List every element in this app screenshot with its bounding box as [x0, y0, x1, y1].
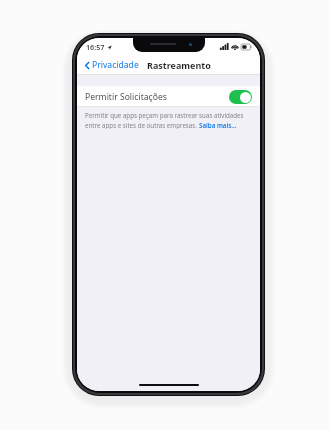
- button[interactable]: Privacidade: [84, 57, 140, 73]
- button[interactable]: Permitir Solicitações: [77, 86, 260, 107]
- button[interactable]: Permitir Solicitações: [229, 90, 252, 104]
- staticText: 16:57: [86, 42, 105, 52]
- staticText: Saiba mais...: [199, 121, 237, 129]
- staticText: Privacidade: [92, 59, 139, 71]
- staticText: Permitir Solicitações: [85, 91, 167, 103]
- staticText: Permitir que apps peçam para rastrear su…: [85, 111, 244, 119]
- staticText: entre apps e sites de outras empresas.: [85, 121, 199, 129]
- staticText: Rastreamento: [147, 59, 211, 71]
- button[interactable]: Saiba mais...: [199, 121, 237, 129]
